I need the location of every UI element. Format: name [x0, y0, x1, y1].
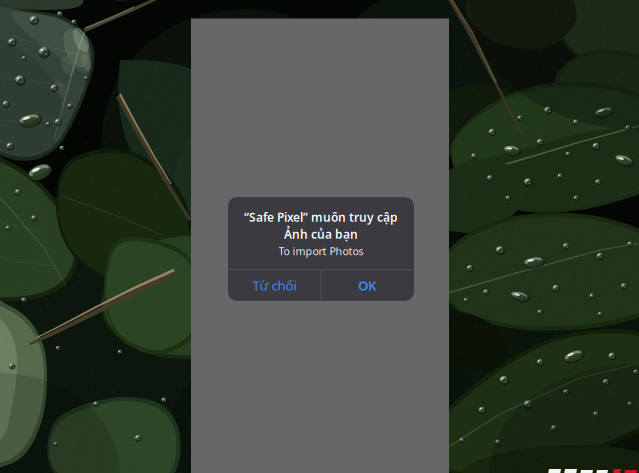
staticText: Ảnh của bạn — [284, 226, 358, 242]
button[interactable]: OK — [321, 270, 414, 301]
button[interactable]: Từ chối — [228, 270, 321, 301]
staticText: OK — [358, 276, 377, 294]
staticText: “Safe Pixel” muốn truy cập — [244, 209, 398, 225]
staticText: Từ chối — [252, 276, 296, 294]
staticText: To import Photos — [278, 244, 363, 258]
